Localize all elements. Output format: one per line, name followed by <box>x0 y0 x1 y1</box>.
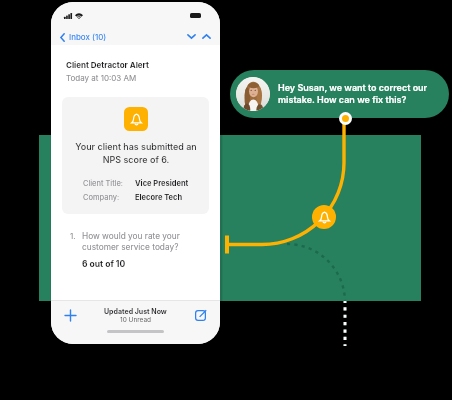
button[interactable]: Hey Susan, we want to correct our mistak… <box>230 70 449 118</box>
staticText: 1. <box>70 231 76 241</box>
staticText: Elecore Tech <box>135 193 183 202</box>
button[interactable]: Compose <box>192 307 209 324</box>
button[interactable]: Inbox (10) <box>57 30 110 44</box>
staticText: Today at 10:03 AM <box>66 73 137 83</box>
button[interactable]: Next message <box>199 29 214 44</box>
staticText: Hey Susan, we want to correct our mistak… <box>278 82 428 106</box>
staticText: How would you rate your customer service… <box>82 231 180 252</box>
staticText: Client Detractor Alert <box>66 60 149 70</box>
staticText: Client Title: <box>83 179 135 188</box>
button[interactable]: Your client has submitted an NPS score o… <box>62 97 209 214</box>
staticText: Updated Just Now <box>104 307 167 315</box>
staticText: 10 Unread <box>120 316 152 324</box>
staticText: Company: <box>83 193 135 202</box>
button[interactable]: Notification alert <box>312 205 336 229</box>
staticText: 6 out of 10 <box>82 259 126 269</box>
staticText: Your client has submitted an NPS score o… <box>75 141 197 165</box>
button[interactable]: Previous message <box>184 29 199 44</box>
staticText: Vice President <box>135 179 189 188</box>
button[interactable]: New message <box>62 307 79 324</box>
staticText: Inbox (10) <box>69 32 107 42</box>
